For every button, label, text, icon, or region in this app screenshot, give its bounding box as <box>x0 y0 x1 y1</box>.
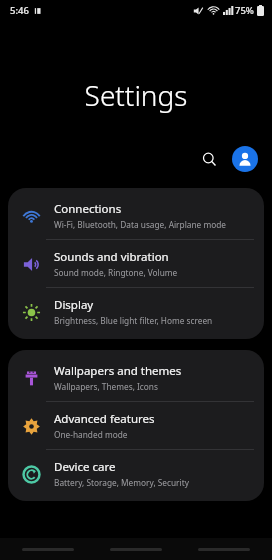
staticText: Connections <box>54 201 122 217</box>
staticText: Sounds and vibration <box>54 249 169 265</box>
staticText: One-handed mode <box>54 429 128 440</box>
button[interactable]: Advanced features <box>8 402 264 449</box>
staticText: Wi-Fi, Bluetooth, Data usage, Airplane m… <box>54 219 226 230</box>
staticText: Device care <box>54 459 116 475</box>
staticText: 5:46 <box>10 4 29 17</box>
staticText: Battery, Storage, Memory, Security <box>54 477 189 488</box>
button[interactable]: Account <box>232 146 258 172</box>
button[interactable]: Device care <box>8 450 264 497</box>
staticText: Brightness, Blue light filter, Home scre… <box>54 315 213 326</box>
staticText: Sound mode, Ringtone, Volume <box>54 267 178 278</box>
staticText: Wallpapers and themes <box>54 363 182 379</box>
staticText: Display <box>54 297 94 313</box>
button[interactable]: Connections <box>8 192 264 239</box>
button[interactable]: Display <box>8 288 264 335</box>
button[interactable]: Sounds and vibration <box>8 240 264 287</box>
staticText: Wallpapers, Themes, Icons <box>54 381 158 392</box>
staticText: 75% <box>235 4 254 17</box>
button[interactable]: Wallpapers and themes <box>8 354 264 401</box>
staticText: Settings <box>0 76 272 114</box>
button[interactable]: Search <box>194 144 224 174</box>
staticText: Advanced features <box>54 411 155 427</box>
